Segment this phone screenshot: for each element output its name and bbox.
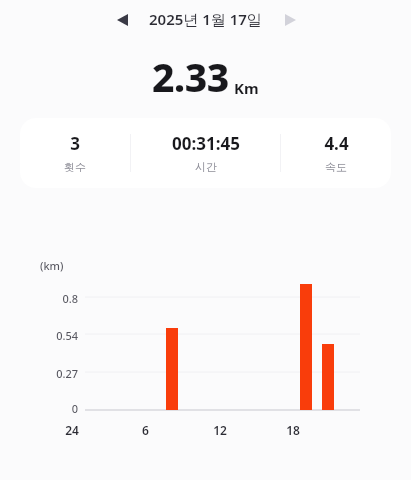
staticText: (km) (40, 258, 64, 273)
button[interactable]: Next day (276, 6, 304, 34)
staticText: 횟수 (64, 160, 86, 174)
button[interactable]: 3 (20, 118, 130, 188)
staticText: 12 (213, 422, 227, 438)
staticText: 속도 (325, 160, 347, 174)
staticText: 시간 (195, 160, 217, 174)
staticText: 24 (65, 422, 79, 438)
staticText: 6 (142, 422, 149, 438)
staticText: 2.33 (152, 50, 229, 103)
staticText: 18 (286, 422, 300, 438)
staticText: 0.54 (56, 328, 78, 343)
staticText: Km (234, 78, 259, 98)
staticText: 00:31:45 (172, 132, 240, 155)
button[interactable]: 4.4 (281, 118, 391, 188)
staticText: 3 (70, 132, 80, 155)
staticText: 0.27 (56, 366, 78, 381)
button[interactable]: 3 (20, 118, 391, 188)
button[interactable]: 2025년 1월 17일 (149, 9, 262, 29)
button[interactable]: Previous day (108, 6, 136, 34)
staticText: 4.4 (324, 132, 349, 155)
staticText: 0.8 (62, 291, 78, 306)
button[interactable]: 00:31:45 (131, 118, 280, 188)
staticText: 0 (71, 401, 78, 416)
